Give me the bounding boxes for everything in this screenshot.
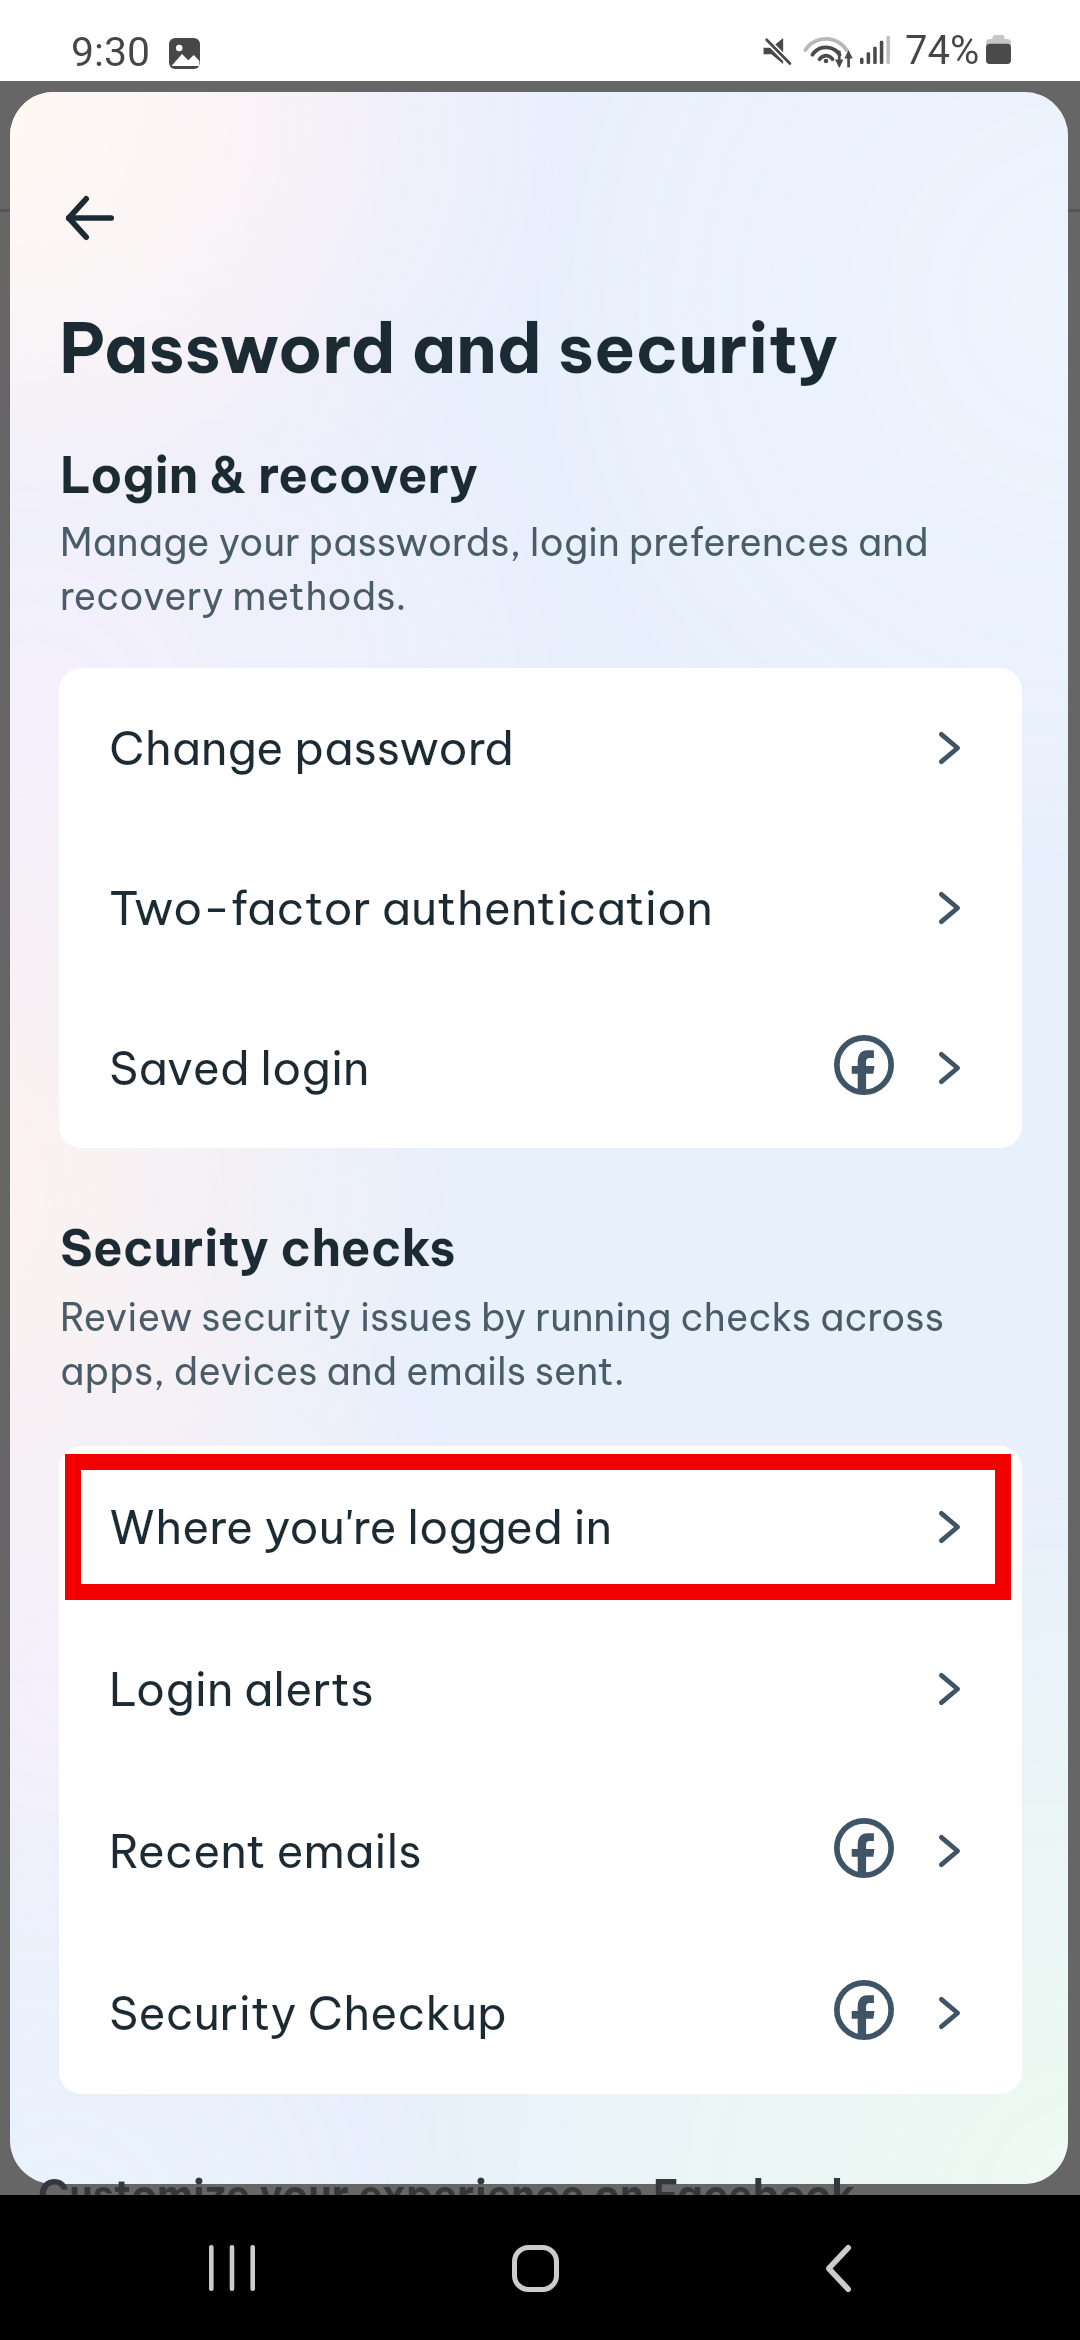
staticText: Password and security (59, 305, 839, 391)
button[interactable]: Where you're logged in (59, 1446, 1022, 1608)
staticText: Change password (109, 719, 515, 777)
staticText: Saved login (109, 1039, 370, 1097)
staticText: Recent emails (109, 1822, 422, 1880)
button[interactable]: Login alerts (59, 1608, 1022, 1770)
button[interactable]: Back (753, 2209, 923, 2327)
button[interactable]: Security Checkup (59, 1932, 1022, 2094)
button[interactable]: Home (450, 2209, 620, 2327)
button[interactable]: Back (40, 168, 140, 268)
staticText: Login & recovery (60, 444, 479, 506)
staticText: 9:30 (71, 28, 151, 76)
staticText: Manage your passwords, login preferences… (60, 518, 960, 620)
staticText: Security Checkup (109, 1984, 508, 2042)
staticText: Security checks (60, 1217, 456, 1279)
button[interactable]: Two-factor authentication (59, 828, 1022, 988)
staticText: Customize your experience on Facebook (38, 2169, 856, 2220)
staticText: Login alerts (109, 1660, 374, 1718)
button[interactable]: Recent emails (59, 1770, 1022, 1932)
staticText: Where you're logged in (109, 1498, 613, 1556)
button[interactable]: Saved login (59, 988, 1022, 1148)
button[interactable]: Change password (59, 668, 1022, 828)
staticText: Two-factor authentication (109, 879, 713, 937)
button[interactable]: Recent apps (147, 2209, 317, 2327)
staticText: 74% (905, 27, 980, 74)
staticText: Review security issues by running checks… (60, 1293, 980, 1395)
